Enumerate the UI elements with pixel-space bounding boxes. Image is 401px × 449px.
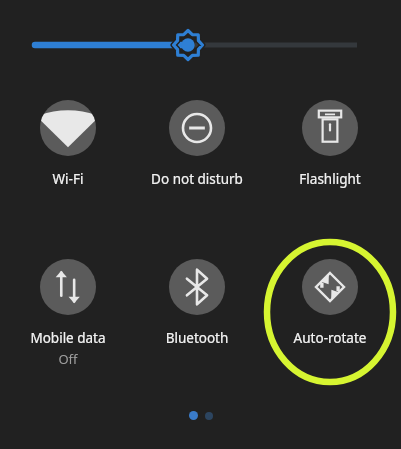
staticText: Mobile data xyxy=(5,329,131,347)
button[interactable]: Auto-rotate xyxy=(267,259,393,347)
staticText: Auto-rotate xyxy=(267,329,393,347)
staticText: Off xyxy=(5,350,131,368)
button[interactable]: Flashlight xyxy=(267,100,393,188)
staticText: Do not disturb xyxy=(134,170,260,188)
button[interactable]: Bluetooth xyxy=(134,259,260,347)
button[interactable]: Do not disturb xyxy=(134,100,260,188)
button[interactable]: Brightness xyxy=(28,28,373,62)
staticText: Bluetooth xyxy=(134,329,260,347)
staticText: Wi-Fi xyxy=(5,170,131,188)
button[interactable]: Wi-Fi xyxy=(5,100,131,188)
button[interactable]: Mobile data xyxy=(5,259,131,368)
staticText: Flashlight xyxy=(267,170,393,188)
